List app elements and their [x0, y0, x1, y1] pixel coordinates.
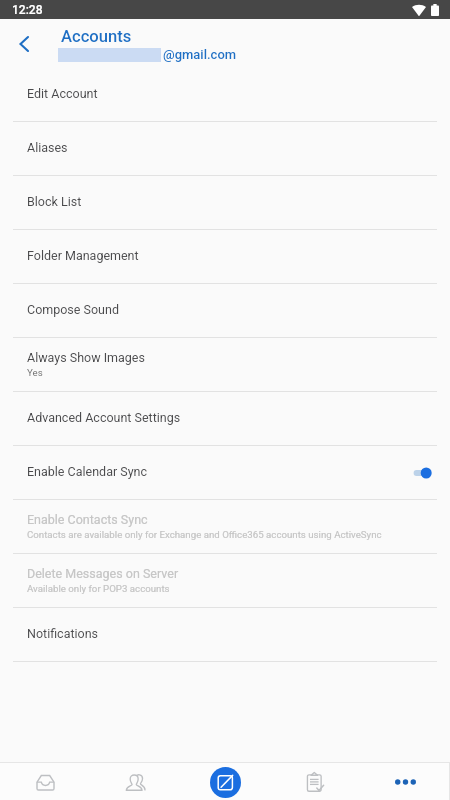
button[interactable]: Folder Management	[0, 230, 450, 283]
staticText: @gmail.com	[163, 47, 237, 62]
button[interactable]: Back	[8, 28, 40, 60]
button[interactable]: Enable Calendar Sync	[0, 446, 450, 499]
button[interactable]: Inbox	[0, 762, 90, 800]
button[interactable]: Notifications	[0, 608, 450, 661]
staticText: Advanced Account Settings	[27, 410, 181, 425]
button[interactable]: Delete Messages on Server	[0, 554, 450, 607]
staticText: Delete Messages on Server	[27, 566, 179, 581]
button[interactable]: Aliases	[0, 122, 450, 175]
staticText: Enable Calendar Sync	[27, 464, 148, 479]
button[interactable]: Compose	[180, 762, 270, 800]
staticText: Available only for POP3 accounts	[27, 583, 170, 594]
staticText: Edit Account	[27, 86, 98, 101]
button[interactable]: Enable Contacts Sync	[0, 500, 450, 553]
button[interactable]: Advanced Account Settings	[0, 392, 450, 445]
button[interactable]: Block List	[0, 176, 450, 229]
button[interactable]: Compose Sound	[0, 284, 450, 337]
staticText: Compose Sound	[27, 302, 119, 317]
staticText: Folder Management	[27, 248, 139, 263]
staticText: 12:28	[12, 3, 43, 17]
staticText: Accounts	[61, 27, 132, 46]
button[interactable]: Tasks	[270, 762, 360, 800]
button[interactable]: Contacts	[90, 762, 180, 800]
staticText: Notifications	[27, 626, 99, 641]
staticText: Enable Contacts Sync	[27, 512, 148, 527]
staticText: Yes	[27, 367, 43, 378]
staticText: Contacts are available only for Exchange…	[27, 529, 382, 540]
button[interactable]: Edit Account	[0, 68, 450, 121]
button[interactable]: Always Show Images	[0, 338, 450, 391]
staticText: Block List	[27, 194, 82, 209]
staticText: Always Show Images	[27, 350, 145, 365]
button[interactable]: More	[360, 762, 450, 800]
staticText: Aliases	[27, 140, 68, 155]
